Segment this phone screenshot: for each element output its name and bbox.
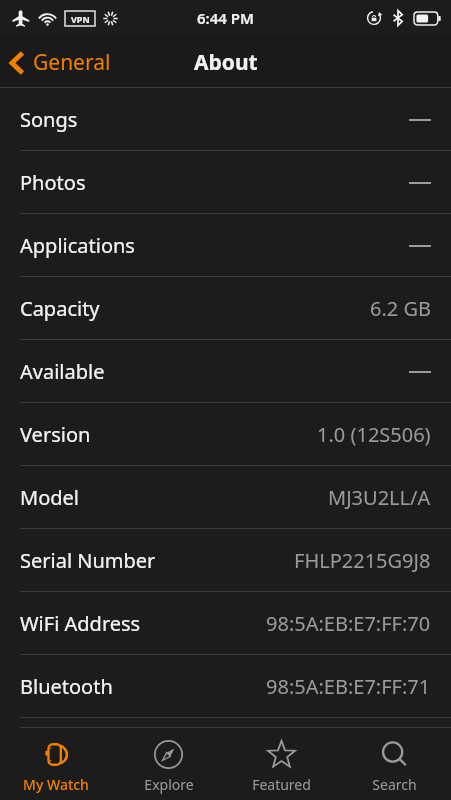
staticText: 6.2 GB xyxy=(370,295,431,322)
button[interactable]: Featured xyxy=(225,733,338,800)
button[interactable]: General xyxy=(0,42,125,83)
button[interactable]: Model xyxy=(0,466,451,529)
staticText: Model xyxy=(20,484,79,511)
button[interactable]: Photos xyxy=(0,151,451,214)
button[interactable]: My Watch xyxy=(0,733,112,800)
staticText: Version xyxy=(20,421,91,448)
staticText: General xyxy=(33,48,111,77)
staticText: Photos xyxy=(20,169,86,196)
staticText: Songs xyxy=(20,106,78,133)
staticText: VPN xyxy=(71,13,90,25)
button[interactable]: Songs xyxy=(0,88,451,151)
staticText: WiFi Address xyxy=(20,610,141,637)
button[interactable]: Version xyxy=(0,403,451,466)
staticText: Applications xyxy=(20,232,135,259)
staticText: Capacity xyxy=(20,295,100,322)
staticText: Explore xyxy=(144,775,194,794)
staticText: Bluetooth xyxy=(20,673,113,700)
staticText: 98:5A:EB:E7:FF:70 xyxy=(266,610,431,637)
button[interactable]: Available xyxy=(0,340,451,403)
staticText: 6:44 PM xyxy=(197,8,254,28)
staticText: Featured xyxy=(252,775,311,794)
staticText: 1.0 (12S506) xyxy=(317,421,431,448)
staticText: Search xyxy=(372,775,417,794)
staticText: Available xyxy=(20,358,105,385)
staticText: MJ3U2LL/A xyxy=(328,484,431,511)
button[interactable]: WiFi Address xyxy=(0,592,451,655)
button[interactable]: Bluetooth xyxy=(0,655,451,718)
staticText: About xyxy=(194,48,258,77)
button[interactable]: Serial Number xyxy=(0,529,451,592)
button[interactable]: Explore xyxy=(112,733,225,800)
button[interactable]: Capacity xyxy=(0,277,451,340)
staticText: 98:5A:EB:E7:FF:71 xyxy=(266,673,431,700)
button[interactable]: Search xyxy=(338,733,451,800)
button[interactable]: Applications xyxy=(0,214,451,277)
staticText: My Watch xyxy=(23,775,89,794)
staticText: Serial Number xyxy=(20,547,156,574)
staticText: FHLP2215G9J8 xyxy=(294,547,431,574)
